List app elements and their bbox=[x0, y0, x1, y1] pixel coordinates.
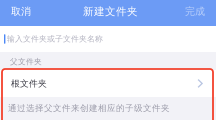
button[interactable]: 取消 bbox=[0, 0, 56, 23]
staticText: 输入文件夹或子文件夹名称 bbox=[7, 34, 103, 44]
button[interactable]: 根文件夹 bbox=[0, 70, 216, 97]
staticText: 新建文件夹 bbox=[83, 5, 138, 18]
button[interactable]: 完成 bbox=[160, 0, 216, 23]
staticText: 父文件夹 bbox=[10, 57, 42, 66]
staticText: 完成 bbox=[185, 5, 205, 18]
staticText: 根文件夹 bbox=[11, 78, 47, 89]
staticText: 取消 bbox=[11, 5, 31, 18]
staticText: 通过选择父文件来创建相应的子级文件夹 bbox=[8, 103, 170, 113]
